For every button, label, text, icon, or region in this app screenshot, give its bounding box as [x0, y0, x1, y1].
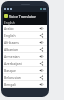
staticText: Albanian	[4, 47, 18, 52]
staticText: Afrikaans	[4, 40, 19, 45]
staticText: Armenian	[4, 54, 20, 59]
button[interactable]: Basque	[3, 67, 47, 74]
other: Play pronunciation	[39, 40, 44, 45]
staticText: Basque	[4, 68, 16, 73]
other: Play pronunciation	[39, 26, 44, 31]
other: Play pronunciation	[39, 82, 44, 87]
other: Share	[39, 33, 44, 38]
button[interactable]: Bengali	[3, 81, 47, 88]
staticText: Arabic	[4, 26, 14, 31]
other: Play pronunciation	[39, 68, 44, 73]
staticText: English	[4, 21, 15, 25]
staticText: Voice Translator Ultimate	[9, 14, 47, 19]
other: Play pronunciation	[39, 54, 44, 59]
other: Share	[39, 61, 44, 66]
button[interactable]: Azerbaijani	[3, 60, 47, 67]
other: Share	[39, 47, 44, 52]
button[interactable]: Voice Translator Ultimate	[3, 12, 47, 20]
staticText: English	[4, 33, 16, 38]
staticText: Azerbaijani	[4, 61, 22, 66]
button[interactable]: Albanian	[3, 46, 47, 53]
button[interactable]: Belarusian	[3, 74, 47, 81]
button[interactable]: Afrikaans	[3, 39, 47, 46]
button[interactable]: Arabic	[3, 25, 47, 32]
staticText: Bengali	[4, 82, 16, 87]
other: Share	[39, 75, 44, 80]
button[interactable]: Armenian	[3, 53, 47, 60]
button[interactable]: English	[3, 32, 47, 39]
button[interactable]: English	[3, 20, 47, 25]
staticText: Belarusian	[4, 75, 21, 80]
